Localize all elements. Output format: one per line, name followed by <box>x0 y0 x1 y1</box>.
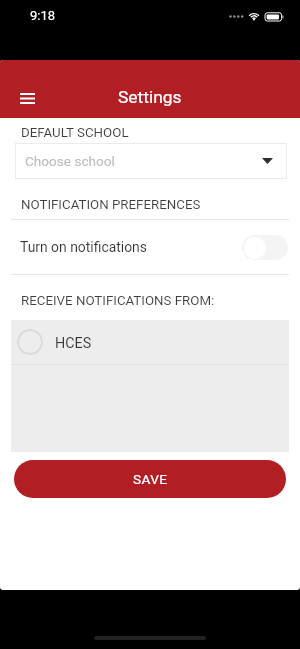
staticText: Turn on notifications <box>20 239 147 255</box>
staticText: DEFAULT SCHOOL <box>21 125 129 141</box>
staticText: HCES <box>55 335 92 352</box>
staticText: Settings <box>118 87 182 107</box>
button[interactable]: SAVE <box>14 460 286 498</box>
staticText: 9:18 <box>30 8 56 23</box>
staticText: SAVE <box>133 471 168 487</box>
button[interactable]: Turn on notifications <box>0 220 300 274</box>
button[interactable]: Open navigation menu <box>6 78 48 118</box>
staticText: NOTIFICATION PREFERENCES <box>21 197 201 213</box>
button[interactable]: HCES <box>11 320 289 364</box>
staticText: Choose school <box>25 153 115 169</box>
button[interactable]: Choose school <box>15 143 287 179</box>
staticText: RECEIVE NOTIFICATIONS FROM: <box>21 293 215 309</box>
